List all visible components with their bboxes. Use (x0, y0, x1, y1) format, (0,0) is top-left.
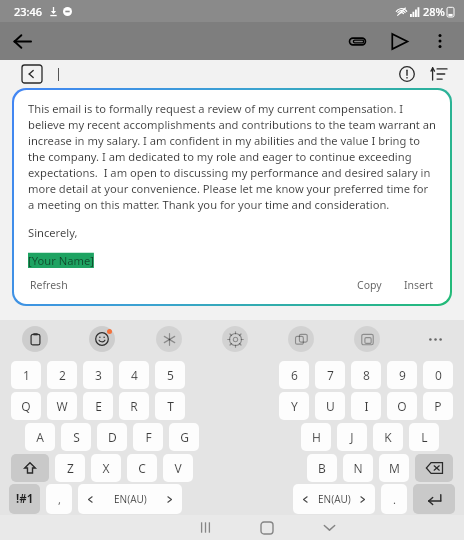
button[interactable]: H (301, 423, 331, 451)
button[interactable]: V (163, 454, 193, 482)
button[interactable]: More options (420, 22, 460, 60)
button[interactable]: . (381, 484, 407, 514)
staticText: Refresh (30, 278, 68, 292)
button[interactable]: This email is to formally request a revi… (14, 90, 450, 304)
button[interactable]: C (127, 454, 157, 482)
button[interactable]: L (409, 423, 439, 451)
button[interactable]: J (337, 423, 367, 451)
staticText: J (350, 429, 354, 445)
button[interactable]: EN(AU) (78, 484, 182, 514)
button[interactable]: F (133, 423, 163, 451)
button[interactable]: K (373, 423, 403, 451)
button[interactable]: M (379, 454, 409, 482)
button[interactable]: 0 (423, 361, 453, 389)
button[interactable]: 6 (279, 361, 309, 389)
button[interactable]: Copy (355, 276, 384, 294)
staticText: 3 (95, 367, 102, 383)
button[interactable]: EN(AU) (293, 484, 375, 514)
button[interactable]: 8 (351, 361, 381, 389)
button[interactable]: W (47, 392, 77, 420)
staticText: . (393, 492, 396, 507)
button[interactable]: !#1 (9, 484, 40, 514)
staticText: H (312, 429, 321, 445)
staticText: Copy (357, 278, 382, 292)
staticText: 4 (131, 367, 138, 383)
button[interactable]: Emoji (89, 326, 115, 352)
button[interactable]: Send (378, 22, 420, 60)
staticText: !#1 (16, 491, 34, 507)
button[interactable]: Settings (222, 326, 248, 352)
button[interactable]: G (169, 423, 199, 451)
button[interactable]: 1 (11, 361, 41, 389)
staticText: N (353, 460, 363, 476)
staticText: [Your Name] (28, 253, 94, 268)
button[interactable]: Split keyboard (288, 326, 314, 352)
button[interactable]: 7 (315, 361, 345, 389)
button[interactable]: X (91, 454, 121, 482)
button[interactable]: Z (55, 454, 85, 482)
staticText: O (397, 398, 407, 414)
button[interactable]: 4 (119, 361, 149, 389)
staticText: EN(AU) (318, 492, 351, 506)
button[interactable]: A (25, 423, 55, 451)
button[interactable]: Floating keyboard (354, 326, 380, 352)
staticText: R (130, 398, 138, 414)
button[interactable]: Previous (22, 65, 42, 83)
staticText: 0 (435, 367, 442, 383)
staticText: 23:46 (14, 4, 43, 19)
button[interactable]: R (119, 392, 149, 420)
staticText: P (434, 398, 442, 414)
button[interactable]: , (46, 484, 72, 514)
staticText: 2 (59, 367, 66, 383)
button[interactable]: P (423, 392, 453, 420)
staticText: Insert (404, 278, 434, 292)
button[interactable]: Backspace (415, 454, 453, 482)
staticText: Sincerely, (28, 225, 78, 240)
button[interactable]: Insert (402, 276, 436, 294)
staticText: 28% (423, 4, 445, 19)
button[interactable]: 5 (155, 361, 185, 389)
button[interactable]: 2 (47, 361, 77, 389)
button[interactable]: Q (11, 392, 41, 420)
button[interactable]: Y (279, 392, 309, 420)
button[interactable]: Back (0, 22, 44, 60)
button[interactable]: Clipboard (22, 326, 48, 352)
button[interactable]: Stickers (156, 326, 182, 352)
button[interactable]: Shift (11, 454, 49, 482)
button[interactable]: T (155, 392, 185, 420)
staticText: Y (291, 398, 298, 414)
button[interactable]: U (315, 392, 345, 420)
button[interactable]: Refresh (28, 276, 70, 294)
staticText: 1 (23, 367, 30, 383)
staticText: G (180, 429, 189, 445)
button[interactable]: E (83, 392, 113, 420)
staticText: EN(AU) (114, 492, 147, 506)
staticText: 7 (327, 367, 334, 383)
staticText: , (58, 492, 61, 507)
button[interactable]: N (343, 454, 373, 482)
button[interactable]: Hide keyboard (309, 515, 349, 540)
button[interactable]: 3 (83, 361, 113, 389)
button[interactable]: Info (394, 61, 420, 87)
button[interactable]: Formatting (426, 61, 452, 87)
button[interactable]: Enter (413, 484, 455, 514)
button[interactable]: D (97, 423, 127, 451)
staticText: F (145, 429, 152, 445)
button[interactable]: S (61, 423, 91, 451)
staticText: V (174, 460, 182, 476)
button[interactable]: More (420, 324, 450, 354)
staticText: K (384, 429, 392, 445)
button[interactable]: B (307, 454, 337, 482)
staticText: A (36, 429, 44, 445)
button[interactable]: I (351, 392, 381, 420)
staticText: Q (21, 398, 31, 414)
button[interactable]: Recents (185, 515, 225, 540)
button[interactable]: O (387, 392, 417, 420)
staticText: S (73, 429, 80, 445)
button[interactable]: Attach (336, 22, 378, 60)
staticText: B (318, 460, 326, 476)
button[interactable]: Home (247, 515, 287, 540)
button[interactable]: 9 (387, 361, 417, 389)
staticText: U (326, 398, 335, 414)
staticText: Z (67, 460, 74, 476)
